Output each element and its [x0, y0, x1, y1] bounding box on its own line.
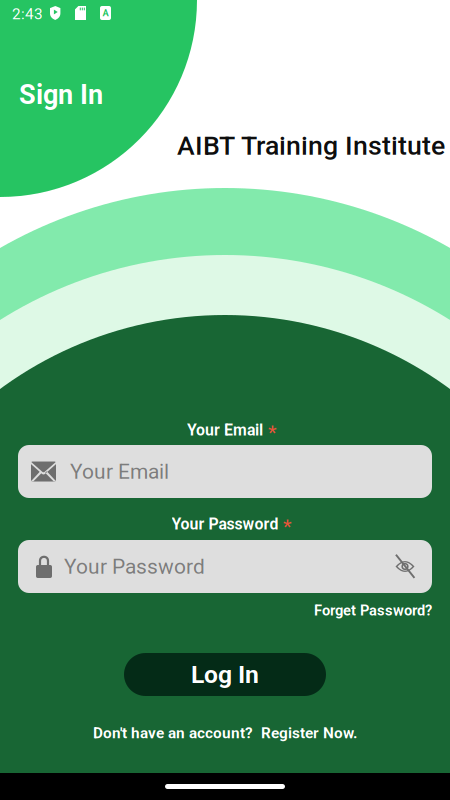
- button[interactable]: Log In: [124, 653, 326, 696]
- staticText: Your Password: [64, 554, 205, 579]
- staticText: A: [102, 7, 108, 18]
- staticText: *: [283, 515, 291, 537]
- staticText: Log In: [191, 660, 259, 689]
- staticText: 2:43: [12, 5, 43, 23]
- staticText: Forget Password?: [314, 602, 432, 619]
- staticText: Your Password: [171, 515, 278, 533]
- staticText: Your Email: [70, 459, 169, 484]
- button[interactable]: Your Email: [18, 445, 432, 498]
- staticText: Your Email: [187, 421, 263, 439]
- staticText: Sign In: [19, 79, 103, 111]
- staticText: Don't have an account?: [93, 724, 257, 742]
- button[interactable]: Register Now.: [257, 724, 357, 742]
- staticText: AIBT Training Institute: [177, 130, 445, 161]
- staticText: *: [268, 421, 276, 443]
- button[interactable]: Forget Password?: [314, 602, 432, 619]
- button[interactable]: Your Password: [18, 540, 432, 593]
- staticText: Register Now.: [257, 724, 357, 742]
